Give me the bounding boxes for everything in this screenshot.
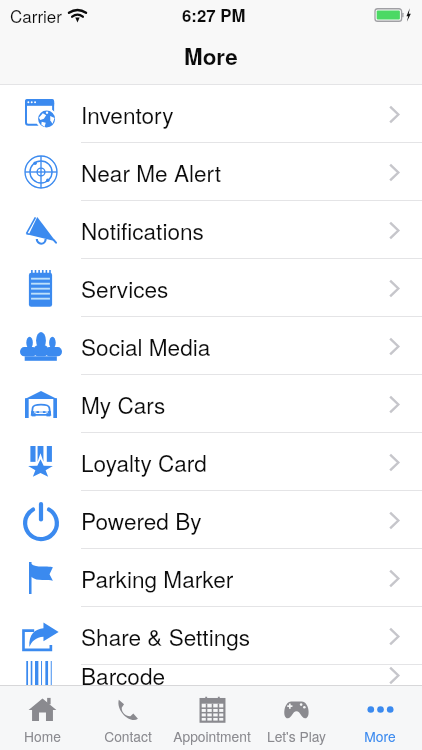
button[interactable]: Near Me Alert [0,143,422,201]
button[interactable]: Home [0,686,85,750]
button[interactable]: Services [0,259,422,317]
button[interactable]: My Cars [0,375,422,433]
button[interactable]: Share & Settings [0,607,422,665]
button[interactable]: Social Media [0,317,422,375]
button[interactable]: Notifications [0,201,422,259]
staticText: More [184,40,238,72]
button[interactable]: Inventory [0,85,422,143]
staticText: Barcode [81,659,166,685]
button[interactable]: Parking Marker [0,549,422,607]
button[interactable]: Powered By [0,491,422,549]
staticText: Home [24,726,61,746]
staticText: Inventory [81,98,174,130]
button[interactable]: Appointment [170,686,254,750]
staticText: Let's Play [267,726,326,746]
staticText: Notifications [81,214,204,246]
staticText: My Cars [81,388,166,420]
staticText: Carrier [10,3,62,27]
button[interactable]: Loyalty Card [0,433,422,491]
button[interactable]: Let's Play [254,686,338,750]
button[interactable]: Contact [85,686,170,750]
staticText: Appointment [173,726,251,746]
button[interactable]: Barcode [0,646,422,685]
staticText: More [364,726,396,746]
staticText: Contact [104,726,152,746]
button[interactable]: More [338,686,422,750]
staticText: Social Media [81,330,211,362]
staticText: Parking Marker [81,562,234,594]
staticText: Services [81,272,169,304]
staticText: Near Me Alert [81,156,222,188]
staticText: Powered By [81,504,202,536]
staticText: Share & Settings [81,620,251,652]
staticText: Loyalty Card [81,446,207,478]
staticText: 6:27 PM [182,3,246,27]
